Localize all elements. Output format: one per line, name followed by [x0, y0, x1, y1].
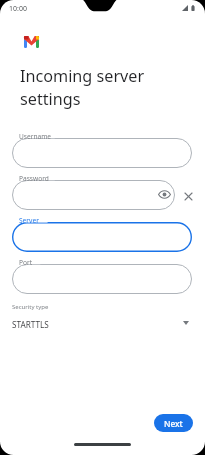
staticText: Password — [19, 174, 49, 183]
button[interactable]: Server — [12, 217, 192, 252]
button[interactable]: Username — [12, 133, 192, 168]
staticText: Incoming server settings — [20, 65, 195, 110]
staticText: Port — [19, 258, 33, 267]
staticText: STARTTLS — [12, 319, 49, 330]
staticText: Security type — [12, 303, 49, 311]
staticText: 10:00 — [9, 4, 27, 14]
staticText: Next — [164, 418, 183, 429]
staticText: Server — [19, 216, 39, 225]
button[interactable]: Security type — [10, 300, 194, 334]
button[interactable]: Clear password — [180, 188, 196, 204]
button[interactable]: Port — [12, 259, 192, 294]
button[interactable]: Show password — [158, 190, 171, 199]
button[interactable]: Password — [12, 175, 175, 210]
staticText: Username — [19, 132, 52, 141]
button[interactable]: Next — [154, 414, 193, 432]
